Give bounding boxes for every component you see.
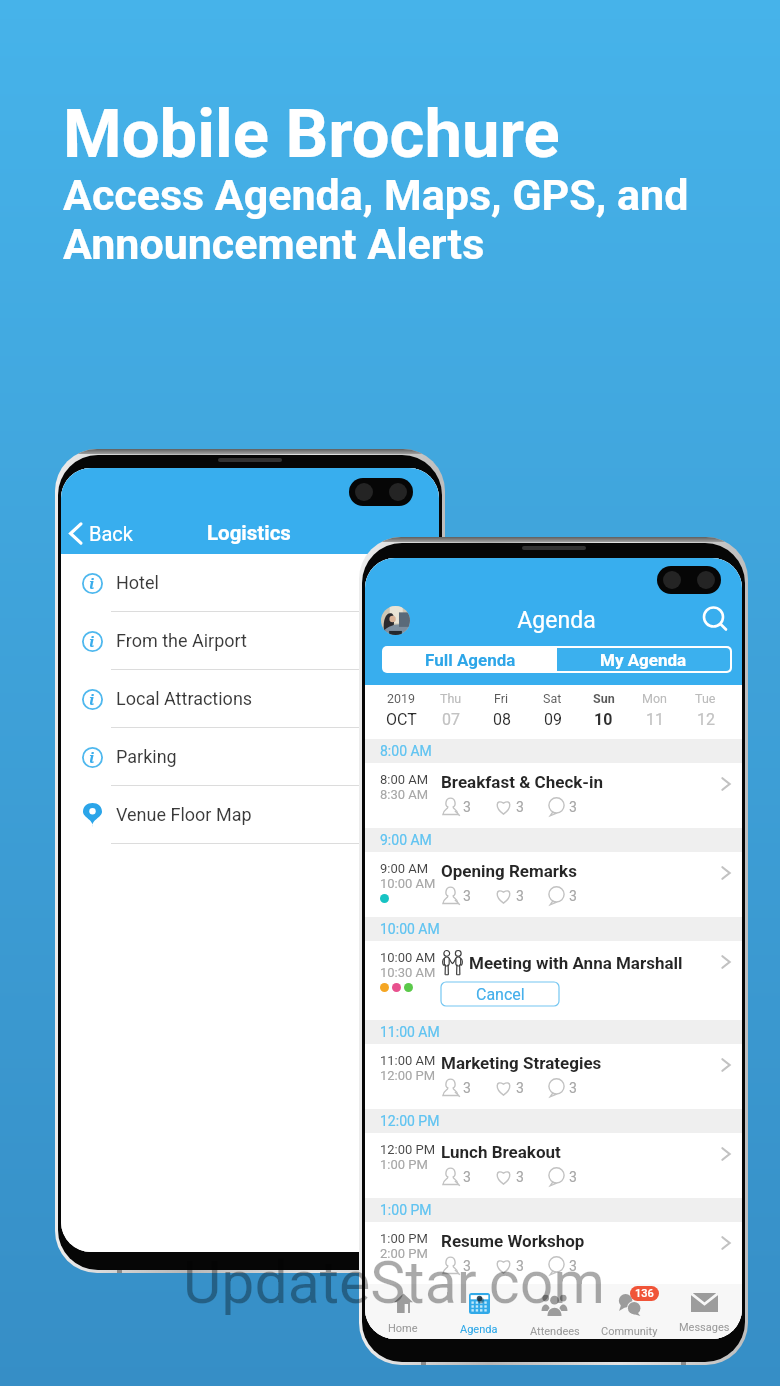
staticText: Thu bbox=[440, 691, 462, 706]
staticText: 10:00 AM bbox=[380, 950, 436, 965]
staticText: 10 bbox=[594, 710, 613, 729]
button[interactable]: 12:00 PM bbox=[365, 1133, 742, 1198]
staticText: i bbox=[89, 747, 95, 767]
staticText: Back bbox=[89, 522, 133, 545]
staticText: Resume Workshop bbox=[441, 1231, 585, 1251]
staticText: From the Airport bbox=[116, 630, 247, 651]
button[interactable]: i bbox=[61, 554, 439, 612]
button[interactable]: 9:00 AM bbox=[365, 852, 742, 917]
staticText: Tue bbox=[695, 691, 716, 706]
staticText: 9:00 AM bbox=[380, 832, 432, 848]
button[interactable]: Sun bbox=[578, 685, 629, 739]
button[interactable]: Messages bbox=[667, 1284, 742, 1339]
staticText: 3 bbox=[463, 1258, 471, 1274]
button[interactable]: i bbox=[61, 612, 439, 670]
staticText: Venue Floor Map bbox=[116, 804, 252, 825]
staticText: 3 bbox=[516, 1080, 524, 1096]
button[interactable]: Attendees bbox=[517, 1284, 592, 1339]
button[interactable]: Agenda bbox=[441, 1284, 517, 1339]
button[interactable]: Home bbox=[365, 1284, 441, 1339]
button[interactable]: 1:00 PM bbox=[365, 1222, 742, 1284]
staticText: 136 bbox=[635, 1287, 654, 1300]
button[interactable]: 136 bbox=[592, 1284, 667, 1339]
staticText: 12:00 PM bbox=[380, 1142, 436, 1157]
button[interactable]: Mon bbox=[629, 685, 680, 739]
staticText: Full Agenda bbox=[425, 650, 516, 670]
button[interactable]: 2019 bbox=[376, 685, 426, 739]
staticText: 10:00 AM bbox=[380, 921, 440, 937]
button[interactable]: i bbox=[61, 728, 439, 786]
staticText: Sun bbox=[593, 691, 615, 706]
staticText: Sat bbox=[543, 691, 562, 706]
staticText: Attendees bbox=[530, 1325, 580, 1338]
staticText: OCT bbox=[386, 710, 417, 729]
staticText: My Agenda bbox=[600, 650, 687, 670]
staticText: 08 bbox=[493, 710, 511, 729]
staticText: 8:00 AM bbox=[380, 772, 429, 787]
staticText: 3 bbox=[516, 799, 524, 815]
staticText: 8:30 AM bbox=[380, 787, 429, 802]
button[interactable]: Sat bbox=[527, 685, 578, 739]
staticText: Lunch Breakout bbox=[441, 1142, 561, 1162]
staticText: 3 bbox=[569, 799, 577, 815]
staticText: Logistics bbox=[207, 521, 291, 545]
staticText: Home bbox=[388, 1322, 418, 1335]
staticText: 1:00 PM bbox=[380, 1202, 432, 1218]
staticText: 3 bbox=[463, 799, 471, 815]
staticText: 09 bbox=[544, 710, 562, 729]
button[interactable]: Fri bbox=[476, 685, 527, 739]
staticText: Agenda bbox=[460, 1323, 498, 1336]
button[interactable]: Venue Floor Map bbox=[61, 786, 439, 844]
staticText: Breakfast & Check-in bbox=[441, 772, 604, 792]
staticText: 3 bbox=[569, 1258, 577, 1274]
staticText: 12:00 PM bbox=[380, 1113, 440, 1129]
staticText: 12:00 PM bbox=[380, 1068, 436, 1083]
staticText: 3 bbox=[463, 888, 471, 904]
staticText: Hotel bbox=[116, 572, 159, 593]
staticText: Mon bbox=[642, 691, 667, 706]
staticText: Access Agenda, Maps, GPS, and Announceme… bbox=[63, 170, 689, 269]
staticText: 3 bbox=[569, 1080, 577, 1096]
staticText: Meeting with Anna Marshall bbox=[469, 953, 683, 973]
staticText: Messages bbox=[679, 1321, 730, 1334]
button[interactable]: Tue bbox=[680, 685, 731, 739]
button[interactable]: Thu bbox=[426, 685, 476, 739]
staticText: 10:30 AM bbox=[380, 965, 436, 980]
button[interactable]: 10:00 AM bbox=[365, 941, 742, 1020]
button[interactable]: Cancel bbox=[441, 982, 559, 1006]
staticText: UpdateStar.com bbox=[183, 1248, 606, 1317]
staticText: Parking bbox=[116, 746, 177, 767]
staticText: Local Attractions bbox=[116, 688, 253, 709]
staticText: 3 bbox=[569, 1169, 577, 1185]
staticText: 3 bbox=[463, 1169, 471, 1185]
staticText: Fri bbox=[494, 691, 509, 706]
staticText: 11:00 AM bbox=[380, 1024, 440, 1040]
staticText: Mobile Brochure bbox=[63, 95, 560, 174]
button[interactable]: Back bbox=[61, 518, 145, 549]
staticText: Cancel bbox=[476, 985, 525, 1004]
staticText: 3 bbox=[516, 1258, 524, 1274]
staticText: 1:00 PM bbox=[380, 1231, 428, 1246]
button[interactable]: 8:00 AM bbox=[365, 763, 742, 828]
button[interactable]: 11:00 AM bbox=[365, 1044, 742, 1109]
button[interactable]: My Agenda bbox=[557, 648, 730, 671]
staticText: Opening Remarks bbox=[441, 861, 577, 881]
staticText: 8:00 AM bbox=[380, 743, 432, 759]
staticText: 3 bbox=[516, 1169, 524, 1185]
staticText: 1:00 PM bbox=[380, 1157, 428, 1172]
button[interactable]: i bbox=[61, 670, 439, 728]
staticText: 2:00 PM bbox=[380, 1246, 428, 1261]
staticText: 9:00 AM bbox=[380, 861, 429, 876]
staticText: i bbox=[89, 631, 95, 651]
button[interactable]: Search bbox=[703, 607, 729, 633]
staticText: 3 bbox=[516, 888, 524, 904]
staticText: 10:00 AM bbox=[380, 876, 436, 891]
staticText: Marketing Strategies bbox=[441, 1053, 602, 1073]
staticText: 11:00 AM bbox=[380, 1053, 436, 1068]
staticText: 07 bbox=[442, 710, 460, 729]
staticText: 12 bbox=[697, 710, 715, 729]
button[interactable]: Profile bbox=[381, 606, 410, 635]
staticText: i bbox=[89, 689, 95, 709]
staticText: Agenda bbox=[410, 607, 703, 634]
button[interactable]: Full Agenda bbox=[384, 648, 557, 671]
